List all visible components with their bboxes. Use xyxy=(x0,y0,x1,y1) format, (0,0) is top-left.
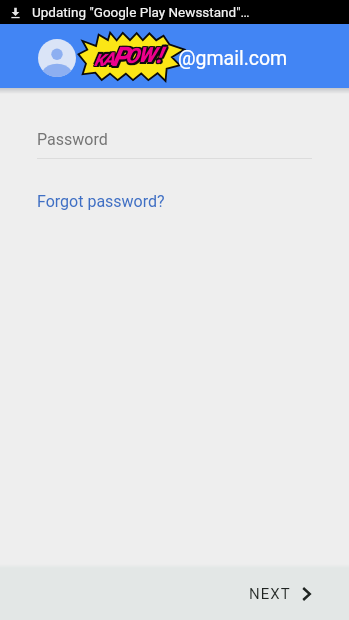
staticText: NEXT xyxy=(249,585,291,603)
staticText: A xyxy=(104,47,116,68)
staticText: K xyxy=(93,51,104,71)
staticText: K xyxy=(94,48,105,68)
staticText: W xyxy=(138,43,156,68)
staticText: ! xyxy=(158,40,165,67)
staticText: A xyxy=(101,47,113,68)
staticText: K xyxy=(96,51,107,71)
staticText: @gmail.com xyxy=(178,47,288,70)
staticText: W xyxy=(137,42,155,67)
staticText: ! xyxy=(155,40,162,67)
button[interactable]: NEXT xyxy=(235,575,349,613)
staticText: ! xyxy=(158,42,165,69)
staticText: A xyxy=(103,47,115,68)
staticText: A xyxy=(104,48,116,69)
staticText: ! xyxy=(156,42,163,69)
staticText: P xyxy=(111,41,129,73)
staticText: P xyxy=(114,40,132,72)
staticText: O xyxy=(124,46,139,71)
staticText: P xyxy=(112,43,130,75)
button[interactable]: Account avatar xyxy=(38,39,76,77)
staticText: P xyxy=(111,43,129,75)
staticText: A xyxy=(103,48,115,69)
staticText: K xyxy=(94,51,105,71)
staticText: Password xyxy=(37,130,108,149)
staticText: A xyxy=(101,48,113,69)
staticText: ! xyxy=(155,43,162,70)
staticText: O xyxy=(125,46,140,71)
staticText: K xyxy=(94,50,105,70)
staticText: P xyxy=(112,41,130,73)
staticText: O xyxy=(124,44,139,69)
staticText: A xyxy=(103,50,115,71)
staticText: W xyxy=(137,43,155,68)
staticText: K xyxy=(93,48,104,68)
staticText: K xyxy=(96,48,107,68)
staticText: P xyxy=(114,41,132,73)
staticText: W xyxy=(140,42,158,67)
staticText: ! xyxy=(155,42,162,69)
staticText: K xyxy=(96,50,107,70)
staticText: P xyxy=(112,40,130,72)
staticText: Updating "Google Play Newsstand"… xyxy=(32,4,250,20)
staticText: Forgot password? xyxy=(37,192,165,211)
staticText: O xyxy=(127,44,142,69)
button[interactable]: Forgot password? xyxy=(30,186,172,217)
staticText: W xyxy=(138,45,156,70)
staticText: A xyxy=(104,50,116,71)
staticText: W xyxy=(140,43,158,68)
staticText: A xyxy=(101,50,113,71)
staticText: O xyxy=(127,43,142,68)
staticText: ! xyxy=(156,40,163,67)
staticText: W xyxy=(137,45,155,70)
staticText: W xyxy=(138,42,156,67)
staticText: O xyxy=(125,44,140,69)
staticText: ! xyxy=(158,43,165,70)
staticText: P xyxy=(111,40,129,72)
staticText: O xyxy=(125,43,140,68)
staticText: P xyxy=(114,43,132,75)
staticText: K xyxy=(93,50,104,70)
staticText: O xyxy=(127,46,142,71)
staticText: W xyxy=(140,45,158,70)
staticText: ! xyxy=(156,43,163,70)
staticText: O xyxy=(124,43,139,68)
